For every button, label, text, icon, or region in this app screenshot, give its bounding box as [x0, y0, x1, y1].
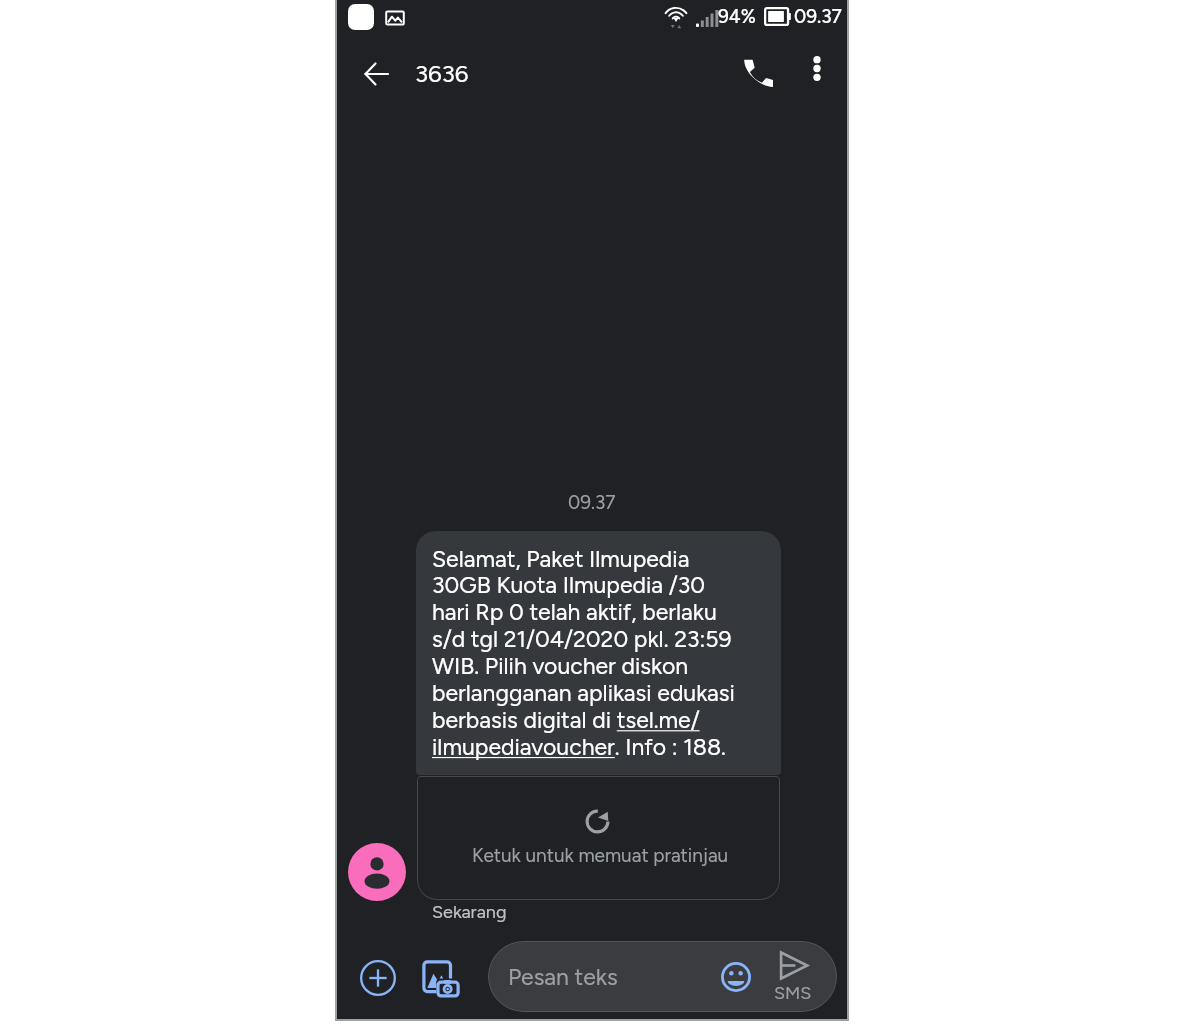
button[interactable]: Send SMS [767, 950, 819, 1004]
staticText: 09.37 [568, 491, 616, 514]
staticText: 09.37 [794, 5, 842, 28]
button[interactable]: Emoji [713, 954, 759, 1000]
button[interactable]: Ketuk untuk memuat pratinjau [417, 776, 780, 900]
button[interactable]: Add attachment [354, 954, 402, 1002]
staticText: 3636 [415, 59, 469, 88]
staticText: Selamat, Paket Ilmupedia 30GB Kuota Ilmu… [432, 545, 738, 761]
staticText: 94% [718, 5, 756, 28]
button[interactable]: Contact avatar [348, 843, 406, 901]
staticText: Pesan teks [508, 963, 618, 991]
button[interactable]: Call [735, 50, 781, 96]
staticText: Ketuk untuk memuat pratinjau [472, 844, 729, 867]
button[interactable]: Back [352, 50, 400, 98]
staticText: Sekarang [432, 901, 507, 923]
button[interactable]: Gallery and camera [416, 954, 465, 1003]
staticText: SMS [774, 982, 812, 1004]
button[interactable]: More options [799, 50, 835, 86]
button[interactable]: Selamat, Paket Ilmupedia 30GB Kuota Ilmu… [416, 531, 781, 775]
button[interactable]: Pesan teks [488, 941, 837, 1012]
